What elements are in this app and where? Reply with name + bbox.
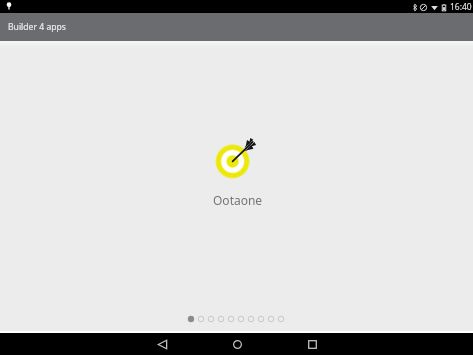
- button[interactable]: Page 9: [266, 314, 276, 323]
- button[interactable]: Home: [207, 333, 267, 355]
- button[interactable]: Recents: [282, 333, 342, 355]
- button[interactable]: Page 3: [206, 314, 216, 323]
- button[interactable]: Builder 4 apps: [0, 13, 473, 41]
- staticText: 16:40: [450, 1, 472, 13]
- button[interactable]: Page 6: [236, 314, 246, 323]
- button[interactable]: Page 7: [246, 314, 256, 323]
- button[interactable]: Page 1: [186, 314, 196, 323]
- button[interactable]: Page 2: [196, 314, 206, 323]
- button[interactable]: Page 5: [226, 314, 236, 323]
- button[interactable]: Page 4: [216, 314, 226, 323]
- button[interactable]: Page 8: [256, 314, 266, 323]
- staticText: Ootaone: [213, 192, 263, 208]
- button[interactable]: Back: [132, 333, 192, 355]
- staticText: Builder 4 apps: [8, 21, 66, 33]
- button[interactable]: Page 10: [276, 314, 286, 323]
